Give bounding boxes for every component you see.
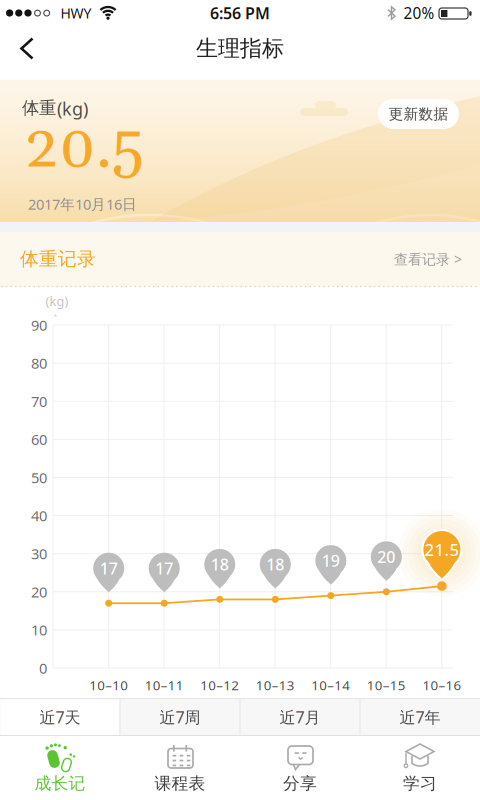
button[interactable] [0, 26, 44, 70]
staticText: 40 [31, 506, 47, 526]
staticText: (kg) [57, 96, 88, 121]
staticText: 20 [31, 582, 47, 602]
staticText: 90 [31, 315, 47, 335]
staticText: 60 [31, 429, 47, 449]
staticText: 10–15 [367, 676, 406, 694]
staticText: 10–10 [89, 676, 128, 694]
staticText: 10–12 [200, 676, 239, 694]
staticText: (kg) [45, 292, 68, 310]
staticText: 10–14 [311, 676, 350, 694]
button[interactable]: 查看记录 > [352, 239, 462, 279]
staticText: 体重 [22, 97, 56, 119]
button[interactable]: 近7天 [1, 699, 119, 735]
staticText: 0 [39, 658, 47, 678]
staticText: 20 [377, 546, 395, 568]
staticText: 30 [31, 544, 47, 564]
staticText: 学习 [403, 773, 437, 794]
staticText: 21.5 [424, 538, 459, 561]
staticText: 10 [31, 620, 47, 640]
staticText: 20% [403, 3, 434, 23]
button[interactable]: 更新数据 [378, 99, 459, 129]
staticText: 50 [31, 467, 47, 487]
staticText: 近7天 [39, 706, 80, 728]
staticText: 10–16 [422, 676, 461, 694]
staticText: 近7年 [399, 706, 440, 728]
staticText: 更新数据 [388, 105, 448, 123]
staticText: 查看记录 > [394, 249, 462, 269]
button[interactable]: 课程表 [120, 735, 240, 800]
staticText: 6:56 PM [210, 2, 270, 24]
staticText: 成长记 [34, 773, 85, 794]
staticText: 近7月 [279, 706, 320, 728]
button[interactable]: 近7月 [241, 699, 359, 735]
button[interactable]: 分享 [240, 735, 360, 800]
staticText: 18 [211, 553, 229, 575]
staticText: 20.5 [25, 111, 144, 187]
staticText: 2017年10月16日 [28, 194, 137, 214]
staticText: 分享 [283, 773, 317, 794]
staticText: 17 [100, 557, 118, 579]
staticText: 10–13 [256, 676, 295, 694]
button[interactable]: 近7年 [361, 699, 479, 735]
staticText: HWY [60, 3, 91, 23]
staticText: 80 [31, 353, 47, 373]
button[interactable]: 学习 [360, 735, 480, 800]
staticText: 近7周 [159, 706, 200, 728]
staticText: 生理指标 [196, 35, 284, 62]
button[interactable]: 成长记 [0, 735, 120, 800]
staticText: 10–11 [145, 676, 184, 694]
staticText: 17 [155, 557, 173, 579]
staticText: 18 [266, 553, 284, 575]
staticText: 课程表 [154, 773, 205, 794]
staticText: 70 [31, 391, 47, 411]
staticText: 体重记录 [20, 247, 96, 271]
staticText: 19 [322, 550, 340, 571]
button[interactable]: 近7周 [121, 699, 239, 735]
